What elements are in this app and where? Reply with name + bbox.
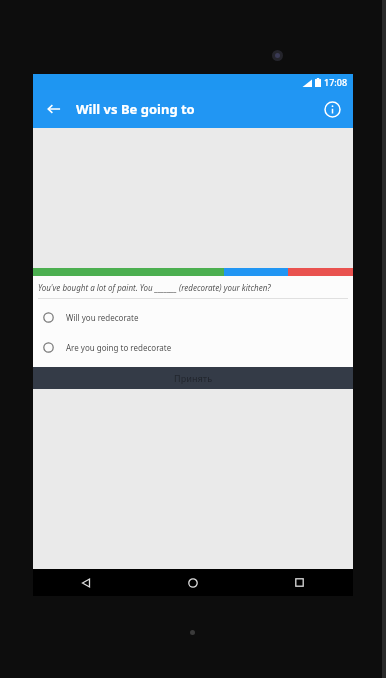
staticText: Are you going to redecorate bbox=[66, 342, 172, 353]
button[interactable]: Recents bbox=[246, 569, 353, 596]
staticText: Will vs Be going to bbox=[76, 100, 195, 118]
staticText: 17:08 bbox=[324, 76, 348, 88]
button[interactable]: Home bbox=[139, 569, 246, 596]
button[interactable]: Back bbox=[39, 94, 69, 124]
button[interactable]: Back bbox=[33, 569, 139, 596]
staticText: You've bought a lot of paint. You ______… bbox=[38, 282, 271, 293]
button[interactable]: Are you going to redecorate bbox=[33, 337, 353, 357]
button[interactable]: Will you redecorate bbox=[33, 307, 353, 327]
staticText: Принять bbox=[174, 372, 213, 384]
button[interactable]: Info bbox=[317, 94, 347, 124]
staticText: Will you redecorate bbox=[66, 312, 139, 323]
